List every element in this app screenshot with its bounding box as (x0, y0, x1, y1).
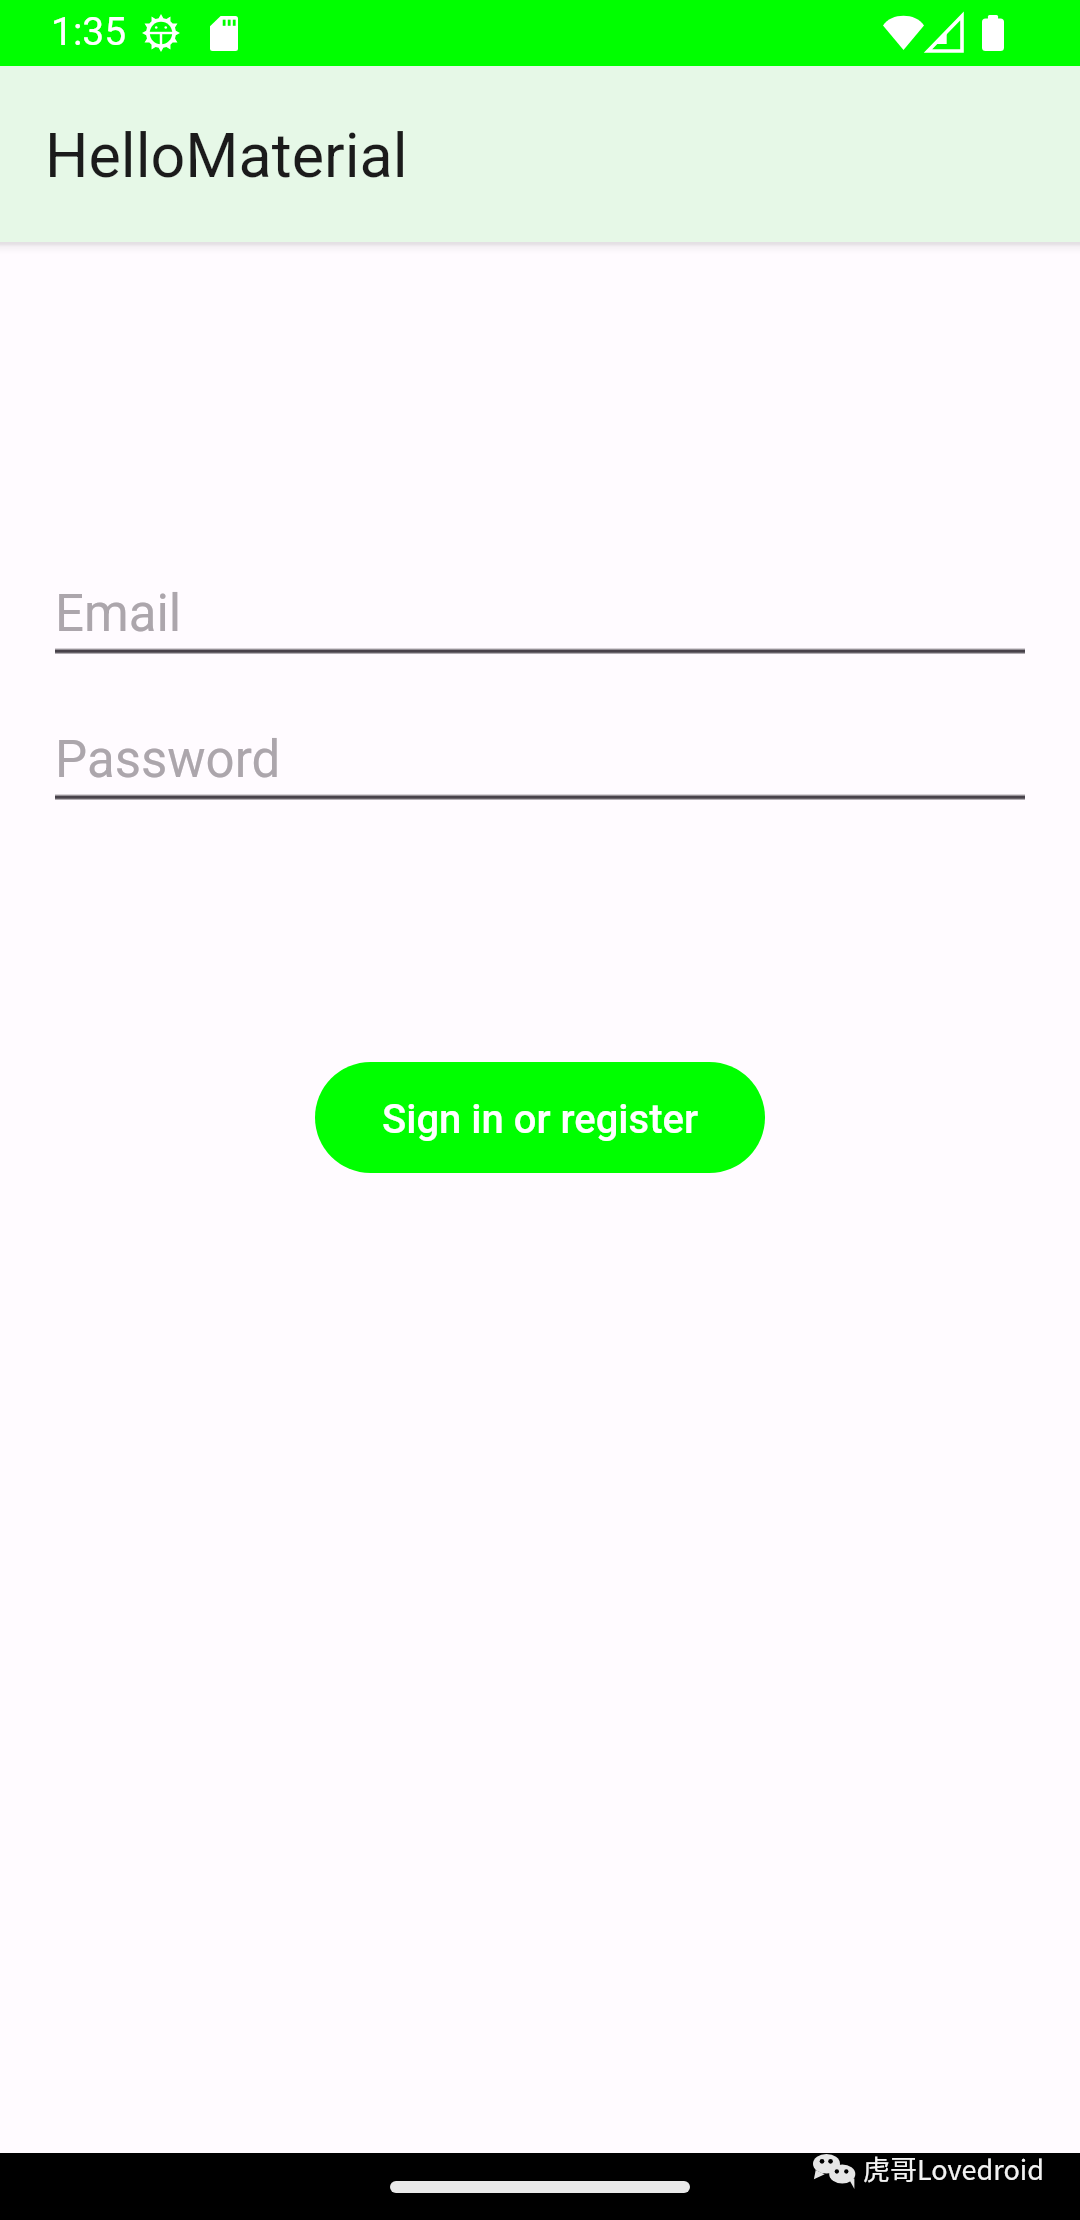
other: Mobile signal (928, 16, 962, 51)
button[interactable]: Password (0, 730, 1080, 800)
staticText: 1:35 (51, 9, 127, 55)
other: Developer options (141, 14, 181, 52)
other: Wi-Fi (883, 15, 924, 50)
button[interactable]: Email (0, 584, 1080, 654)
staticText: HelloMaterial (45, 120, 408, 191)
button[interactable]: Sign in or register (315, 1062, 765, 1173)
staticText: Password (55, 730, 281, 790)
staticText: Email (55, 584, 182, 644)
staticText: 虎哥Lovedroid (863, 2149, 1044, 2188)
other: Battery (982, 15, 1004, 51)
button[interactable]: Home (390, 2181, 690, 2193)
staticText: Sign in or register (382, 1096, 699, 1143)
other: SD card (210, 16, 238, 51)
